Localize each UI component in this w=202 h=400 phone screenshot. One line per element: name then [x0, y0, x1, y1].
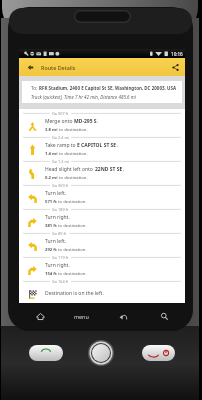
button[interactable]: Destination is on the left.	[19, 285, 185, 301]
button[interactable]: Turn right.	[19, 261, 185, 277]
staticText: Turn left.	[45, 190, 67, 197]
staticText: Go 369 ft	[52, 183, 69, 188]
staticText: Go 164 ft	[52, 279, 69, 284]
staticText: Go 907 ft	[52, 111, 69, 116]
staticText: to destination.	[58, 175, 88, 181]
staticText: RFK Stadium, 2400 E Capitol St SE, Washi…	[39, 85, 176, 91]
button[interactable]: Merge onto	[19, 117, 185, 133]
button[interactable]: Take ramp to	[19, 141, 185, 157]
staticText: Take ramp to	[45, 142, 77, 149]
staticText: Turn left.	[45, 238, 67, 245]
staticText: To:	[31, 85, 39, 91]
staticText: 0.2 mi	[45, 175, 58, 181]
button[interactable]: Back	[19, 58, 41, 76]
button[interactable]: Head slight left onto	[19, 165, 185, 181]
staticText: 292 ft	[45, 247, 57, 253]
staticText: .	[117, 142, 119, 149]
button[interactable]: menu	[66, 303, 96, 329]
staticText: Truck (quickest), Time 7 hr 42 min, Dist…	[31, 94, 136, 100]
button[interactable]: Turn left.	[19, 189, 185, 205]
staticText: Route Details	[41, 64, 76, 71]
staticText: 154 ft	[45, 271, 57, 277]
staticText: to destination.	[58, 151, 88, 157]
staticText: to destination.	[57, 271, 87, 277]
staticText: Head slight left onto	[45, 166, 95, 173]
staticText: to destination.	[57, 247, 87, 253]
staticText: 381 ft	[45, 223, 57, 229]
staticText: menu	[74, 313, 89, 320]
staticText: 22ND ST SE	[95, 166, 123, 173]
staticText: 3.8 mi	[45, 127, 58, 133]
button[interactable]: Turn right.	[19, 213, 185, 229]
staticText: Turn right.	[45, 214, 70, 221]
staticText: Go 2.4 mi	[52, 135, 69, 140]
button[interactable]: Home	[25, 303, 55, 329]
staticText: to destination.	[57, 223, 87, 229]
button[interactable]: Back	[109, 303, 137, 329]
staticText: Go 1.2 mi	[52, 159, 69, 164]
staticText: MD-295 S	[74, 118, 97, 125]
staticText: Go 89 ft	[52, 231, 67, 236]
button[interactable]: Turn left.	[19, 237, 185, 253]
staticText: to destination.	[57, 199, 87, 205]
staticText: .	[123, 166, 125, 173]
staticText: Turn right.	[45, 262, 70, 269]
button[interactable]: Search	[150, 303, 178, 329]
staticText: Go 189 ft	[52, 207, 69, 212]
staticText: 571 ft	[45, 199, 57, 205]
button[interactable]: Share	[165, 58, 185, 76]
staticText: 1.4 mi	[45, 151, 58, 157]
staticText: .	[97, 118, 99, 125]
staticText: 10:16	[171, 51, 183, 57]
staticText: to destination.	[58, 127, 88, 133]
staticText: E CAPITOL ST SE	[77, 142, 117, 149]
staticText: Destination is on the left.	[45, 290, 104, 297]
staticText: Merge onto	[45, 118, 74, 125]
staticText: Go 119 ft	[52, 255, 69, 260]
